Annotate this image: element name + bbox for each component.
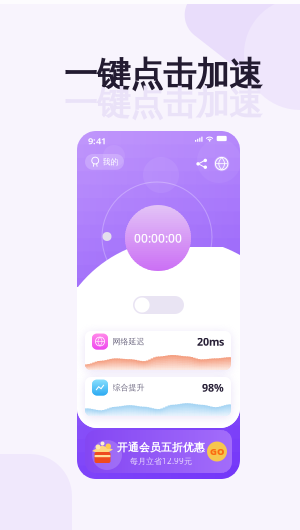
staticText: 98% bbox=[202, 380, 224, 395]
staticText: 一键点击加速 bbox=[64, 54, 262, 95]
button[interactable]: 我的 bbox=[85, 154, 124, 170]
button[interactable]: 加速开关 bbox=[133, 296, 184, 314]
staticText: 00:00:00 bbox=[134, 230, 182, 246]
staticText: 9:41 bbox=[88, 134, 106, 147]
staticText: 开通会员五折优惠 bbox=[117, 441, 205, 454]
button[interactable]: 分享 bbox=[196, 158, 207, 169]
staticText: GO bbox=[210, 445, 224, 458]
staticText: 20ms bbox=[197, 334, 224, 349]
staticText: 每月立省12.99元 bbox=[130, 456, 192, 466]
staticText: 网络延迟 bbox=[112, 337, 144, 346]
staticText: 一键点击加速 bbox=[64, 83, 262, 124]
button[interactable]: 语言 bbox=[214, 156, 229, 171]
staticText: 我的 bbox=[102, 157, 118, 167]
button[interactable]: 开通会员五折优惠 bbox=[85, 430, 232, 473]
staticText: 综合提升 bbox=[112, 383, 144, 392]
